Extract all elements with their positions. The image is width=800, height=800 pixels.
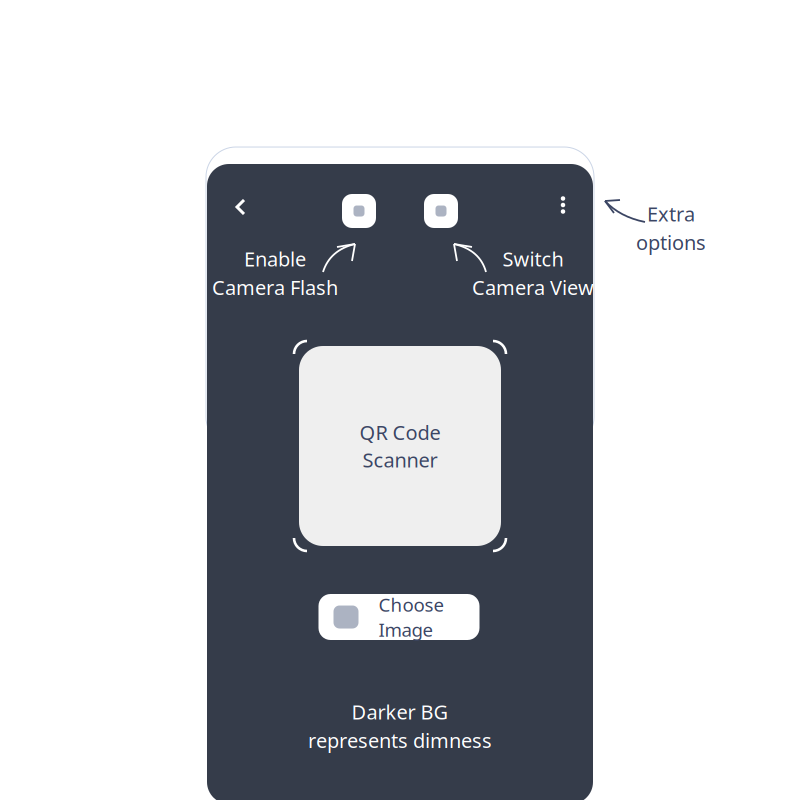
button[interactable]: Back	[234, 198, 260, 224]
button[interactable]: Extra options	[550, 190, 576, 220]
staticText: represents dimness	[308, 727, 492, 754]
staticText: Darker BG	[351, 698, 448, 725]
staticText: Enable	[244, 245, 306, 272]
button[interactable]: Enable Camera Flash	[342, 194, 376, 228]
staticText: QR Code	[359, 419, 440, 445]
button[interactable]: Switch Camera View	[424, 194, 458, 228]
staticText: Camera Flash	[212, 274, 338, 301]
staticText: Extra	[647, 200, 695, 227]
button[interactable]: Choose Image	[318, 594, 479, 640]
staticText: options	[636, 229, 706, 256]
staticText: Camera View	[472, 274, 594, 301]
staticText: Scanner	[362, 446, 437, 473]
staticText: Choose Image	[378, 592, 444, 642]
staticText: Switch	[502, 245, 563, 272]
